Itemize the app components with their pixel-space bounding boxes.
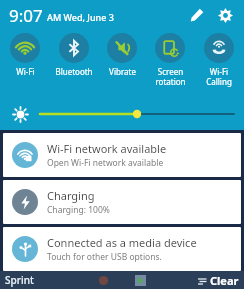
- staticText: Charging: [47, 188, 95, 203]
- button[interactable]: Charging: [3, 180, 241, 224]
- button[interactable]: Edit: [186, 4, 208, 26]
- staticText: Touch for other USB options.: [47, 251, 162, 263]
- staticText: Bluetooth: [55, 66, 93, 77]
- staticText: AM Wed, June 3: [47, 11, 114, 23]
- button[interactable]: Wi-Fi: [2, 30, 48, 77]
- staticText: Clear: [210, 273, 239, 288]
- staticText: Wi-Fi network available: [47, 141, 167, 156]
- button[interactable]: Connected as a media device: [3, 227, 241, 271]
- staticText: Vibrate: [109, 66, 136, 77]
- staticText: Open Wi-Fi network available: [47, 157, 164, 169]
- button[interactable]: Wi-Fi network available: [3, 133, 241, 177]
- button[interactable]: Settings: [214, 4, 236, 26]
- button[interactable]: Clear: [197, 273, 239, 288]
- staticText: 9:07: [9, 4, 43, 27]
- button[interactable]: Screen rotation: [147, 30, 193, 87]
- button[interactable]: Wi-Fi Calling: [196, 30, 242, 87]
- button[interactable]: Brightness: [10, 104, 30, 124]
- staticText: Wi-Fi: [16, 66, 35, 77]
- staticText: Charging: 100%: [47, 204, 110, 216]
- button[interactable]: Bluetooth: [51, 30, 97, 77]
- button[interactable]: Brightness slider: [40, 105, 234, 123]
- staticText: Sprint: [5, 273, 34, 287]
- staticText: Connected as a media device: [47, 235, 197, 250]
- staticText: Screen rotation: [155, 66, 186, 87]
- button[interactable]: Vibrate: [99, 30, 145, 77]
- staticText: Wi-Fi Calling: [206, 66, 232, 87]
